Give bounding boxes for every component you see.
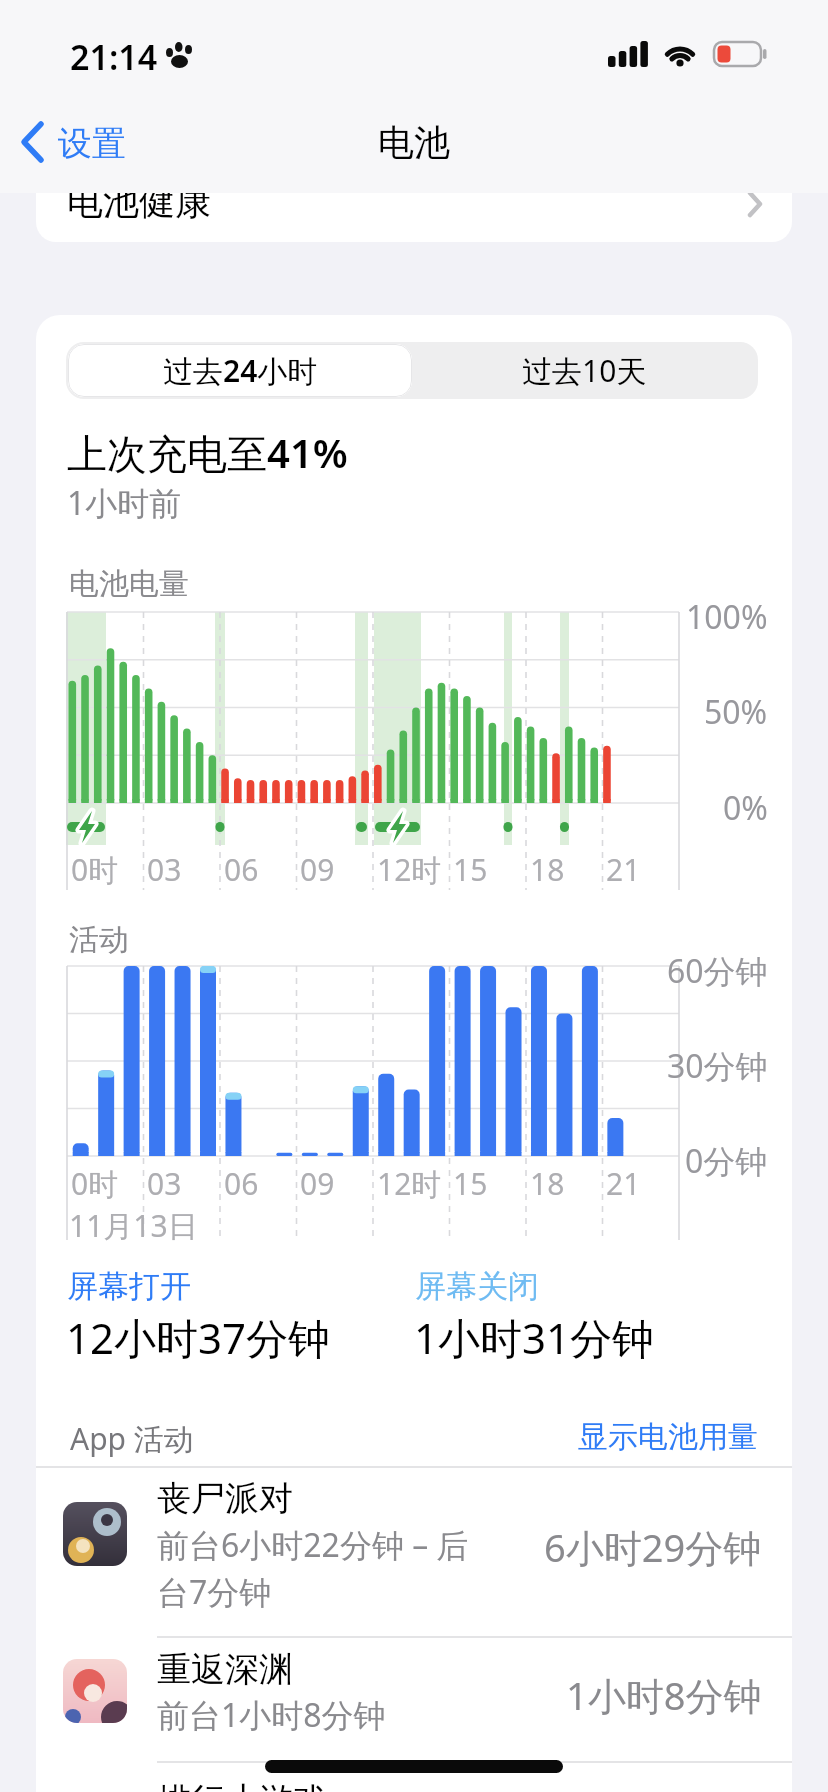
staticText: 12时	[377, 1163, 442, 1204]
staticText: 0时	[71, 1163, 119, 1204]
staticText: 03	[147, 849, 182, 890]
staticText: 1小时8分钟	[566, 1669, 762, 1721]
staticText: 过去24小时	[163, 350, 318, 391]
staticText: 丧尸派对	[157, 1477, 293, 1520]
staticText: 12时	[377, 849, 442, 890]
button[interactable]: 过去10天	[412, 344, 756, 397]
staticText: 50%	[704, 690, 768, 734]
staticText: 1小时31分钟	[414, 1309, 655, 1366]
staticText: 前台1小时8分钟	[157, 1693, 386, 1737]
button[interactable]: 过去24小时	[68, 344, 412, 397]
staticText: 电池	[378, 120, 450, 165]
staticText: 电池电量	[69, 565, 189, 603]
staticText: 21:14	[70, 34, 158, 80]
button[interactable]	[36, 1638, 792, 1762]
staticText: 15	[453, 1163, 488, 1204]
staticText: 活动	[69, 921, 129, 959]
staticText: 09	[300, 1163, 335, 1204]
staticText: 1小时前	[67, 481, 182, 525]
staticText: 60分钟	[667, 949, 768, 993]
staticText: 11月13日	[69, 1205, 198, 1246]
staticText: 0分钟	[685, 1139, 768, 1183]
staticText: 100%	[686, 595, 768, 639]
button[interactable]: 设置	[58, 122, 126, 165]
staticText: 排行小游戏	[157, 1779, 327, 1792]
staticText: 12小时37分钟	[66, 1309, 331, 1366]
staticText: 30分钟	[667, 1044, 768, 1088]
staticText: 21	[606, 1163, 641, 1204]
staticText: 0时	[71, 849, 119, 890]
staticText: 03	[147, 1163, 182, 1204]
staticText: App 活动	[70, 1418, 194, 1459]
staticText: 过去10天	[522, 350, 647, 391]
staticText: 18	[530, 1163, 565, 1204]
staticText: 屏幕打开	[67, 1267, 191, 1306]
staticText: 15	[453, 849, 488, 890]
staticText: 06	[224, 1163, 259, 1204]
staticText: 重返深渊	[157, 1648, 293, 1691]
staticText: 前台6小时22分钟 – 后 台7分钟	[157, 1523, 469, 1614]
staticText: 显示电池用量	[578, 1418, 758, 1456]
button[interactable]: 电池健康	[36, 193, 792, 242]
button[interactable]	[20, 120, 46, 164]
staticText: 09	[300, 849, 335, 890]
staticText: 6小时29分钟	[544, 1521, 762, 1573]
button[interactable]: 显示电池用量	[438, 1418, 758, 1456]
staticText: 屏幕关闭	[415, 1267, 539, 1306]
staticText: 21	[606, 849, 641, 890]
staticText: 0%	[723, 786, 768, 830]
button[interactable]	[36, 1468, 792, 1638]
staticText: 上次充电至41%	[67, 425, 348, 480]
staticText: 电池健康	[67, 193, 211, 224]
staticText: 06	[224, 849, 259, 890]
staticText: 18	[530, 849, 565, 890]
